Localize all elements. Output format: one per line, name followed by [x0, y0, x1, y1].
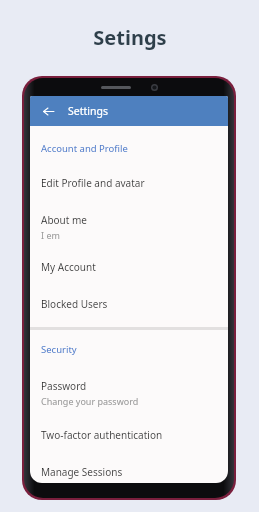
staticText: Settings: [68, 104, 108, 118]
staticText: My Account: [41, 260, 96, 274]
button[interactable]: Security: [30, 343, 228, 356]
button[interactable]: About me: [30, 213, 228, 241]
button[interactable]: Blocked Users: [30, 297, 228, 311]
staticText: Security: [41, 343, 77, 356]
staticText: Edit Profile and avatar: [41, 176, 145, 190]
staticText: Setings: [93, 24, 167, 51]
staticText: Password: [41, 379, 87, 393]
staticText: Account and Profile: [41, 142, 128, 155]
button[interactable]: Account and Profile: [30, 142, 228, 155]
button[interactable]: Manage Sessions: [30, 465, 228, 479]
staticText: Two-factor authentication: [41, 428, 163, 442]
staticText: I em: [41, 229, 60, 241]
staticText: About me: [41, 213, 87, 227]
staticText: Manage Sessions: [41, 465, 123, 479]
staticText: Change your password: [41, 395, 139, 407]
button[interactable]: Two-factor authentication: [30, 428, 228, 442]
button[interactable]: My Account: [30, 260, 228, 274]
button[interactable]: Password: [30, 379, 228, 407]
button[interactable]: Back: [37, 100, 59, 122]
staticText: Blocked Users: [41, 297, 108, 311]
button[interactable]: Edit Profile and avatar: [30, 176, 228, 190]
